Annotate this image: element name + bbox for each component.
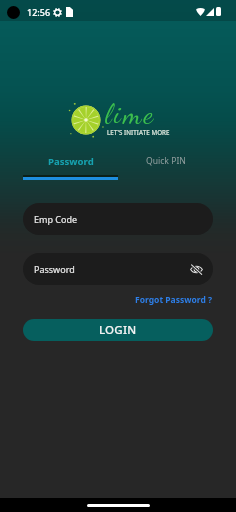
button[interactable]: LOGIN (23, 319, 213, 341)
staticText: 12:56 (27, 6, 51, 18)
staticText: Password (48, 155, 94, 168)
staticText: Emp Code (34, 213, 78, 225)
button[interactable]: Forgot Password ? (135, 294, 213, 306)
button[interactable]: Show password (188, 261, 205, 278)
button[interactable]: Password (23, 155, 118, 180)
staticText: lime (105, 97, 156, 131)
button[interactable]: Password (23, 253, 213, 285)
staticText: LOGIN (99, 322, 137, 338)
button[interactable]: Emp Code (23, 203, 213, 235)
staticText: Forgot Password ? (135, 294, 213, 306)
staticText: Quick PIN (146, 155, 186, 167)
staticText: LET'S INITIATE MORE (107, 128, 170, 136)
staticText: Password (34, 263, 75, 275)
button[interactable]: Quick PIN (118, 155, 213, 179)
